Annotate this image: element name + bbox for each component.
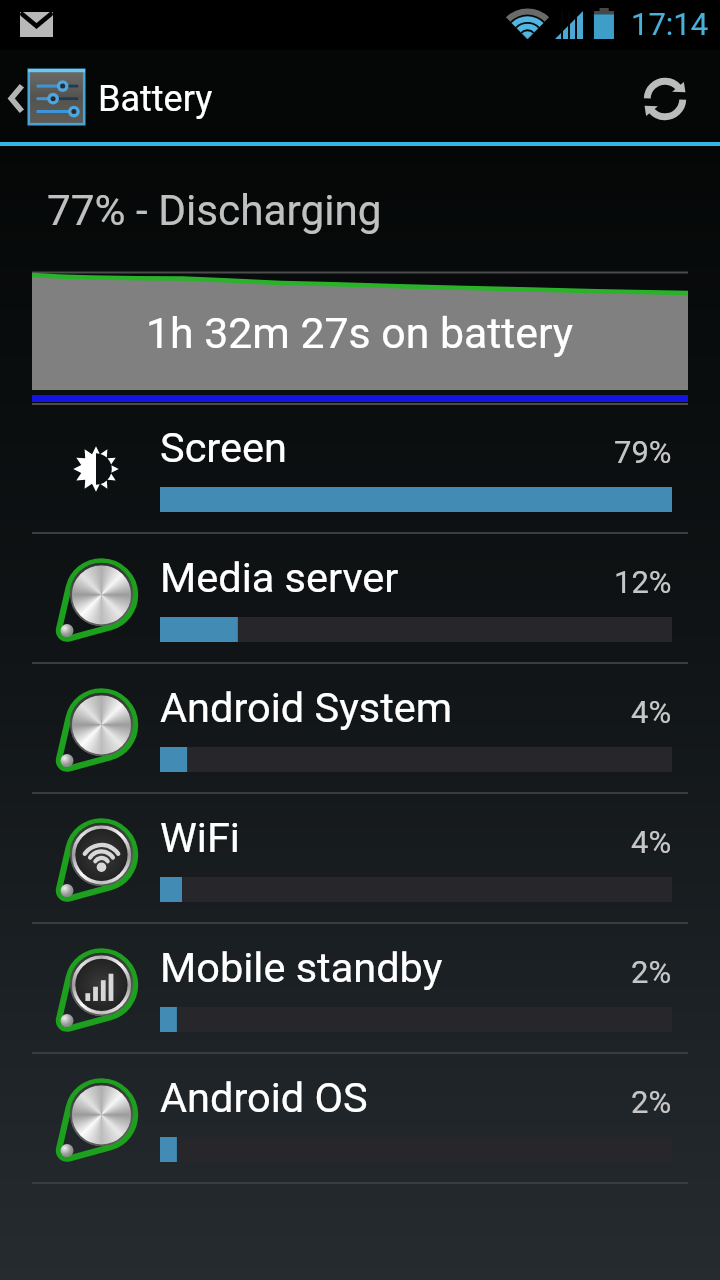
staticText: Screen — [160, 423, 287, 472]
staticText: 2% — [631, 954, 672, 990]
staticText: WiFi — [160, 813, 240, 862]
staticText: 1h 32m 27s on battery — [146, 308, 574, 358]
staticText: 17:14 — [631, 6, 709, 42]
button[interactable]: Navigate up — [0, 50, 92, 148]
staticText: Android OS — [160, 1073, 368, 1122]
staticText: 12% — [614, 564, 672, 600]
button[interactable]: Screen — [0, 405, 720, 535]
staticText: Media server — [160, 553, 399, 602]
staticText: 4% — [631, 694, 672, 730]
staticText: 4% — [631, 824, 672, 860]
button[interactable]: Mobile standby — [0, 925, 720, 1055]
staticText: 79% — [614, 434, 672, 470]
button[interactable]: WiFi — [0, 795, 720, 925]
staticText: Mobile standby — [160, 943, 443, 992]
staticText: 2% — [631, 1084, 672, 1120]
button[interactable]: Android OS — [0, 1055, 720, 1185]
staticText: Android System — [160, 683, 453, 732]
button[interactable]: Refresh — [610, 50, 720, 148]
button[interactable]: Android System — [0, 665, 720, 795]
staticText: 77% - Discharging — [47, 186, 382, 236]
staticText: Battery — [98, 78, 213, 120]
button[interactable]: Media server — [0, 535, 720, 665]
